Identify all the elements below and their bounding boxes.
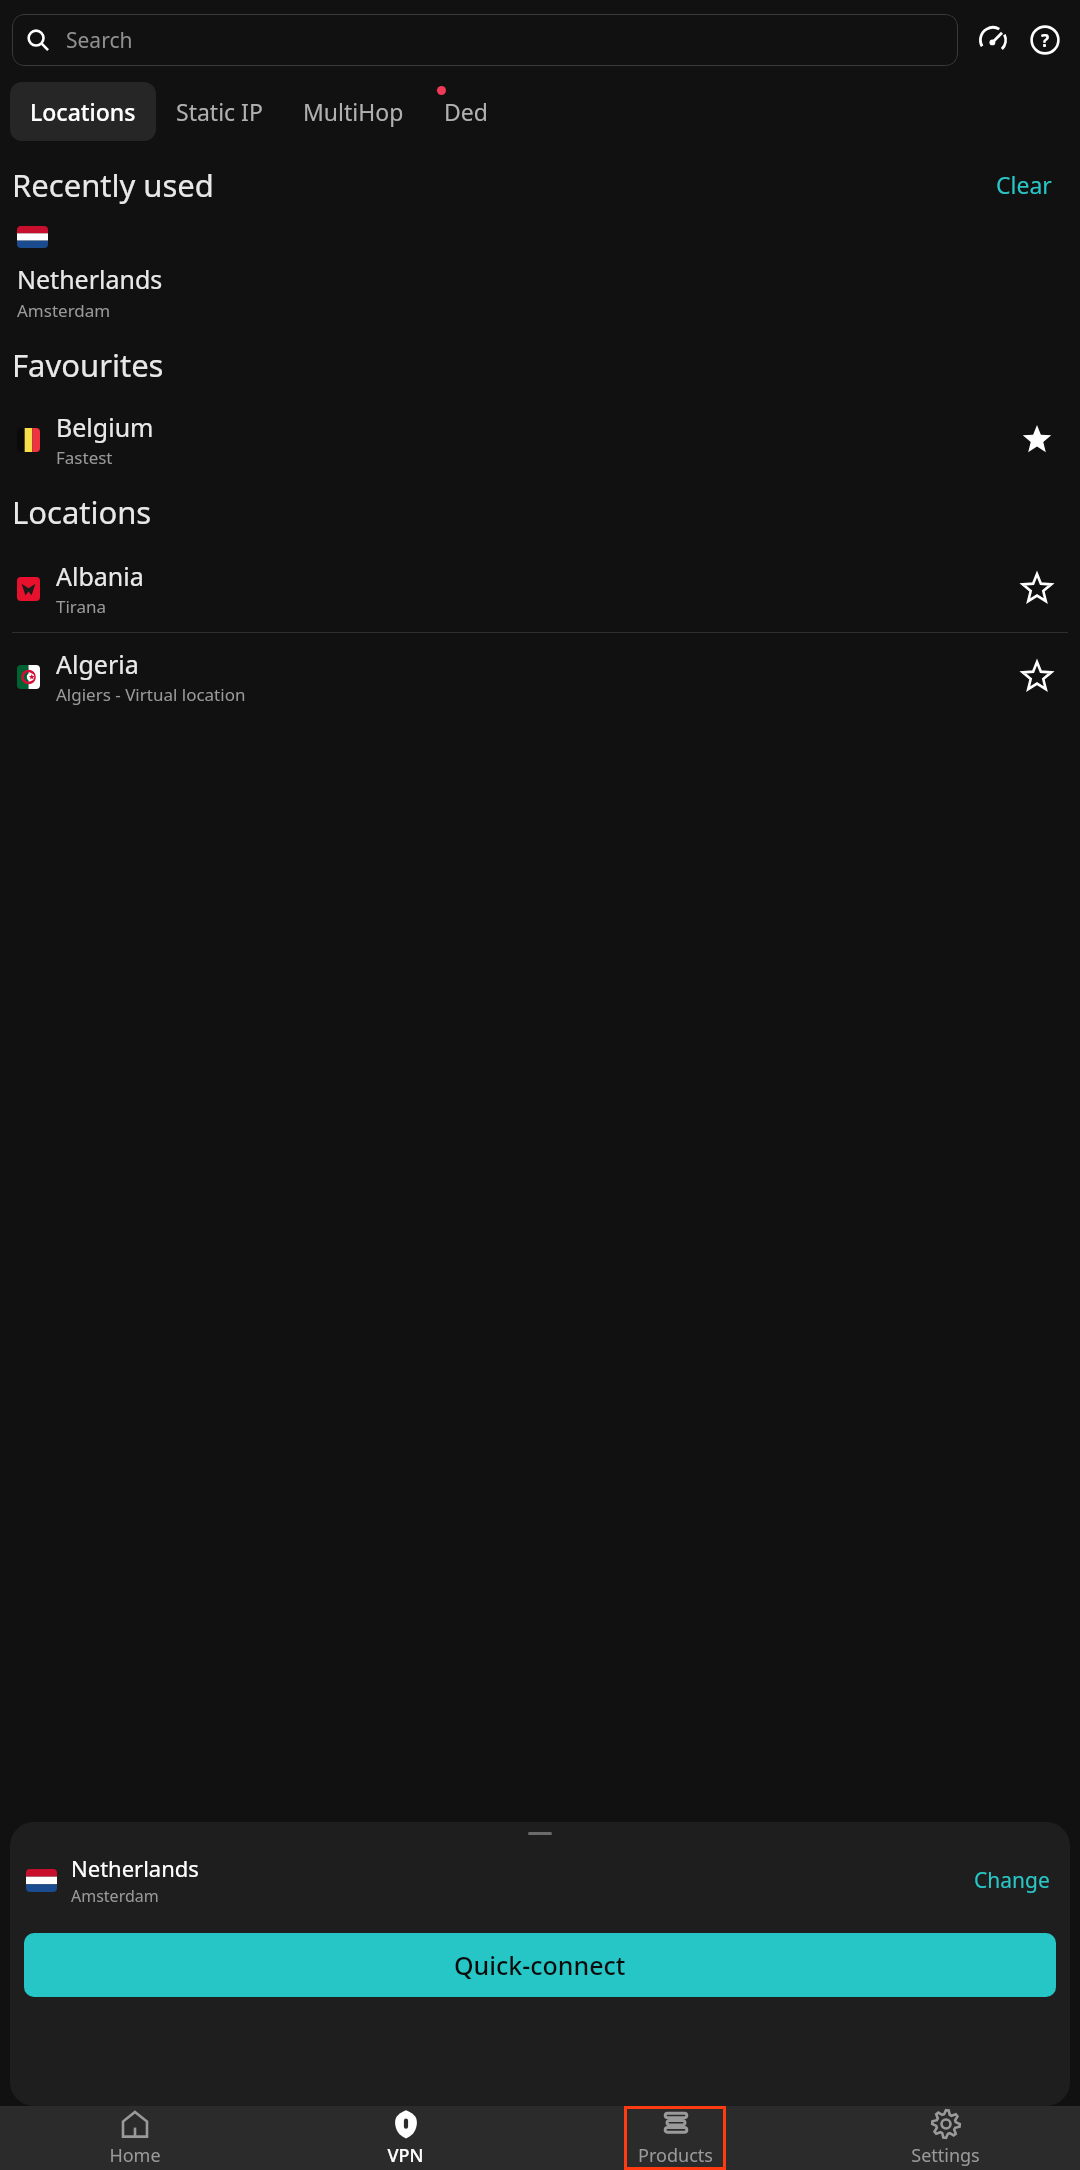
button[interactable]: Netherlands: [0, 224, 1080, 324]
staticText: Belgium: [56, 410, 154, 444]
staticText: Locations: [12, 491, 152, 533]
button[interactable]: Search: [12, 14, 958, 66]
staticText: Netherlands: [71, 1853, 199, 1883]
button[interactable]: MultiHop: [283, 82, 424, 141]
button[interactable]: Belgium: [0, 410, 1080, 469]
staticText: Favourites: [12, 344, 164, 386]
staticText: Locations: [30, 96, 136, 127]
staticText: Recently used: [12, 164, 990, 206]
staticText: VPN: [387, 2143, 424, 2168]
staticText: Tirana: [56, 595, 107, 618]
staticText: Ded: [444, 96, 488, 127]
button[interactable]: Quick-connect: [24, 1933, 1056, 1997]
button[interactable]: Products: [624, 2106, 726, 2170]
staticText: Static IP: [176, 96, 263, 127]
staticText: Settings: [911, 2143, 980, 2168]
button[interactable]: Remove favourite: [1014, 417, 1060, 463]
button[interactable]: Home: [0, 2106, 270, 2170]
staticText: ?: [1041, 29, 1050, 52]
button[interactable]: Settings: [810, 2106, 1080, 2170]
staticText: Algeria: [56, 647, 139, 681]
button[interactable]: Help: [1024, 19, 1066, 61]
button[interactable]: Add favourite: [1014, 654, 1060, 700]
staticText: Amsterdam: [17, 299, 111, 322]
staticText: Netherlands: [17, 262, 163, 296]
staticText: Search: [66, 26, 133, 55]
staticText: MultiHop: [303, 96, 404, 127]
staticText: Albania: [56, 559, 144, 593]
staticText: Quick-connect: [454, 1948, 626, 1982]
staticText: Algiers - Virtual location: [56, 683, 246, 706]
staticText: Products: [638, 2143, 713, 2168]
staticText: Home: [109, 2143, 161, 2168]
button[interactable]: Clear: [990, 163, 1058, 206]
button[interactable]: Change: [970, 1862, 1054, 1899]
button[interactable]: Locations: [10, 82, 156, 141]
button[interactable]: Netherlands: [26, 1853, 1054, 1907]
button[interactable]: Static IP: [156, 82, 283, 141]
button[interactable]: Ded: [424, 82, 508, 141]
button[interactable]: VPN: [270, 2106, 540, 2170]
staticText: Fastest: [56, 446, 113, 469]
button[interactable]: Algeria: [0, 647, 1080, 706]
staticText: Amsterdam: [71, 1885, 159, 1907]
button[interactable]: Albania: [0, 559, 1080, 618]
button[interactable]: Add favourite: [1014, 566, 1060, 612]
button[interactable]: Speed test: [972, 19, 1014, 61]
